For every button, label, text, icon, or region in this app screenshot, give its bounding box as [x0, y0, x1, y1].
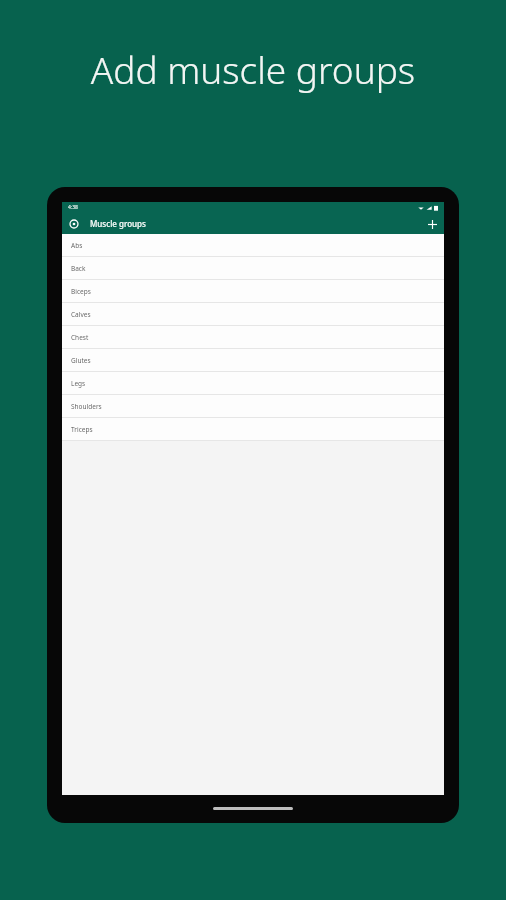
staticText: Triceps	[71, 425, 93, 434]
button[interactable]: Calves	[62, 303, 444, 326]
button[interactable]: Glutes	[62, 349, 444, 372]
button[interactable]: Back	[62, 257, 444, 280]
button[interactable]: Legs	[62, 372, 444, 395]
button[interactable]: Abs	[62, 234, 444, 257]
staticText: 4:38	[68, 204, 78, 211]
button[interactable]: Chest	[62, 326, 444, 349]
staticText: Abs	[71, 241, 83, 250]
staticText: Muscle groups	[90, 218, 146, 229]
button[interactable]: Biceps	[62, 280, 444, 303]
staticText: Shoulders	[71, 402, 102, 411]
staticText: Add muscle groups	[0, 44, 506, 94]
staticText: Legs	[71, 379, 86, 388]
staticText: Back	[71, 264, 86, 273]
staticText: Biceps	[71, 287, 91, 296]
button[interactable]: Add muscle group	[424, 216, 440, 232]
button[interactable]: Shoulders	[62, 395, 444, 418]
staticText: Calves	[71, 310, 91, 319]
button[interactable]: Triceps	[62, 418, 444, 441]
button[interactable]: Open navigation menu	[67, 217, 81, 231]
staticText: Chest	[71, 333, 89, 342]
staticText: Glutes	[71, 356, 91, 365]
